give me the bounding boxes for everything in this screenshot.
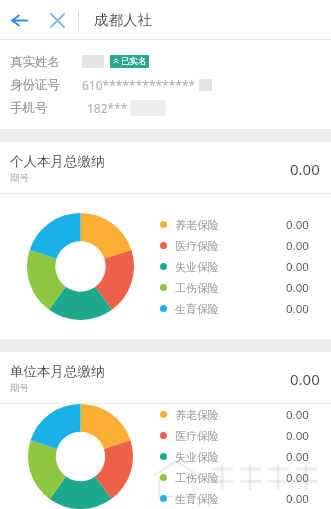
staticText: 工伤保险 — [175, 471, 219, 485]
staticText: 手机号 — [10, 100, 48, 116]
button[interactable]: 医疗保险 — [160, 235, 320, 256]
staticText: 已实名 — [121, 56, 147, 67]
staticText: 真实姓名 — [10, 54, 60, 70]
staticText: 0.00 — [286, 449, 320, 465]
staticText: 生育保险 — [175, 302, 219, 316]
staticText: 养老保险 — [175, 218, 219, 232]
staticText: 0.00 — [286, 259, 320, 275]
staticText: 610************** — [82, 77, 196, 93]
button[interactable]: Close — [38, 1, 76, 39]
staticText: 成都人社 — [94, 11, 152, 29]
button[interactable]: 已实名 — [112, 55, 147, 68]
staticText: 0.00 — [286, 491, 320, 507]
button[interactable]: 工伤保险 — [160, 277, 320, 298]
button[interactable]: 生育保险 — [160, 488, 320, 509]
staticText: 0.00 — [286, 238, 320, 254]
staticText: 0.00 — [286, 428, 320, 444]
button[interactable]: 单位本月总缴纳 — [10, 363, 320, 394]
staticText: 个人本月总缴纳 — [10, 153, 105, 170]
staticText: 养老保险 — [175, 408, 219, 422]
button[interactable]: 养老保险 — [160, 404, 320, 425]
staticText: 0.00 — [290, 369, 320, 389]
staticText: 0.00 — [286, 217, 320, 233]
button[interactable]: 养老保险 — [160, 214, 320, 235]
staticText: 0.00 — [290, 159, 320, 179]
button[interactable]: Back — [0, 1, 38, 39]
staticText: 失业保险 — [175, 260, 219, 274]
staticText: 0.00 — [286, 407, 320, 423]
staticText: 工伤保险 — [175, 281, 219, 295]
button[interactable]: 工伤保险 — [160, 467, 320, 488]
button[interactable]: 个人本月总缴纳 — [10, 153, 320, 184]
staticText: 失业保险 — [175, 450, 219, 464]
staticText: 生育保险 — [175, 492, 219, 506]
staticText: 医疗保险 — [175, 239, 219, 253]
staticText: 身份证号 — [10, 77, 60, 93]
button[interactable]: 生育保险 — [160, 298, 320, 319]
button[interactable]: 医疗保险 — [160, 425, 320, 446]
staticText: 医疗保险 — [175, 429, 219, 443]
staticText: 期号 — [10, 172, 29, 184]
staticText: 182*** — [87, 100, 128, 116]
staticText: 0.00 — [286, 301, 320, 317]
staticText: 单位本月总缴纳 — [10, 363, 105, 380]
staticText: 0.00 — [286, 280, 320, 296]
button[interactable]: 失业保险 — [160, 446, 320, 467]
staticText: 期号 — [10, 382, 29, 394]
button[interactable]: 失业保险 — [160, 256, 320, 277]
staticText: 0.00 — [286, 470, 320, 486]
